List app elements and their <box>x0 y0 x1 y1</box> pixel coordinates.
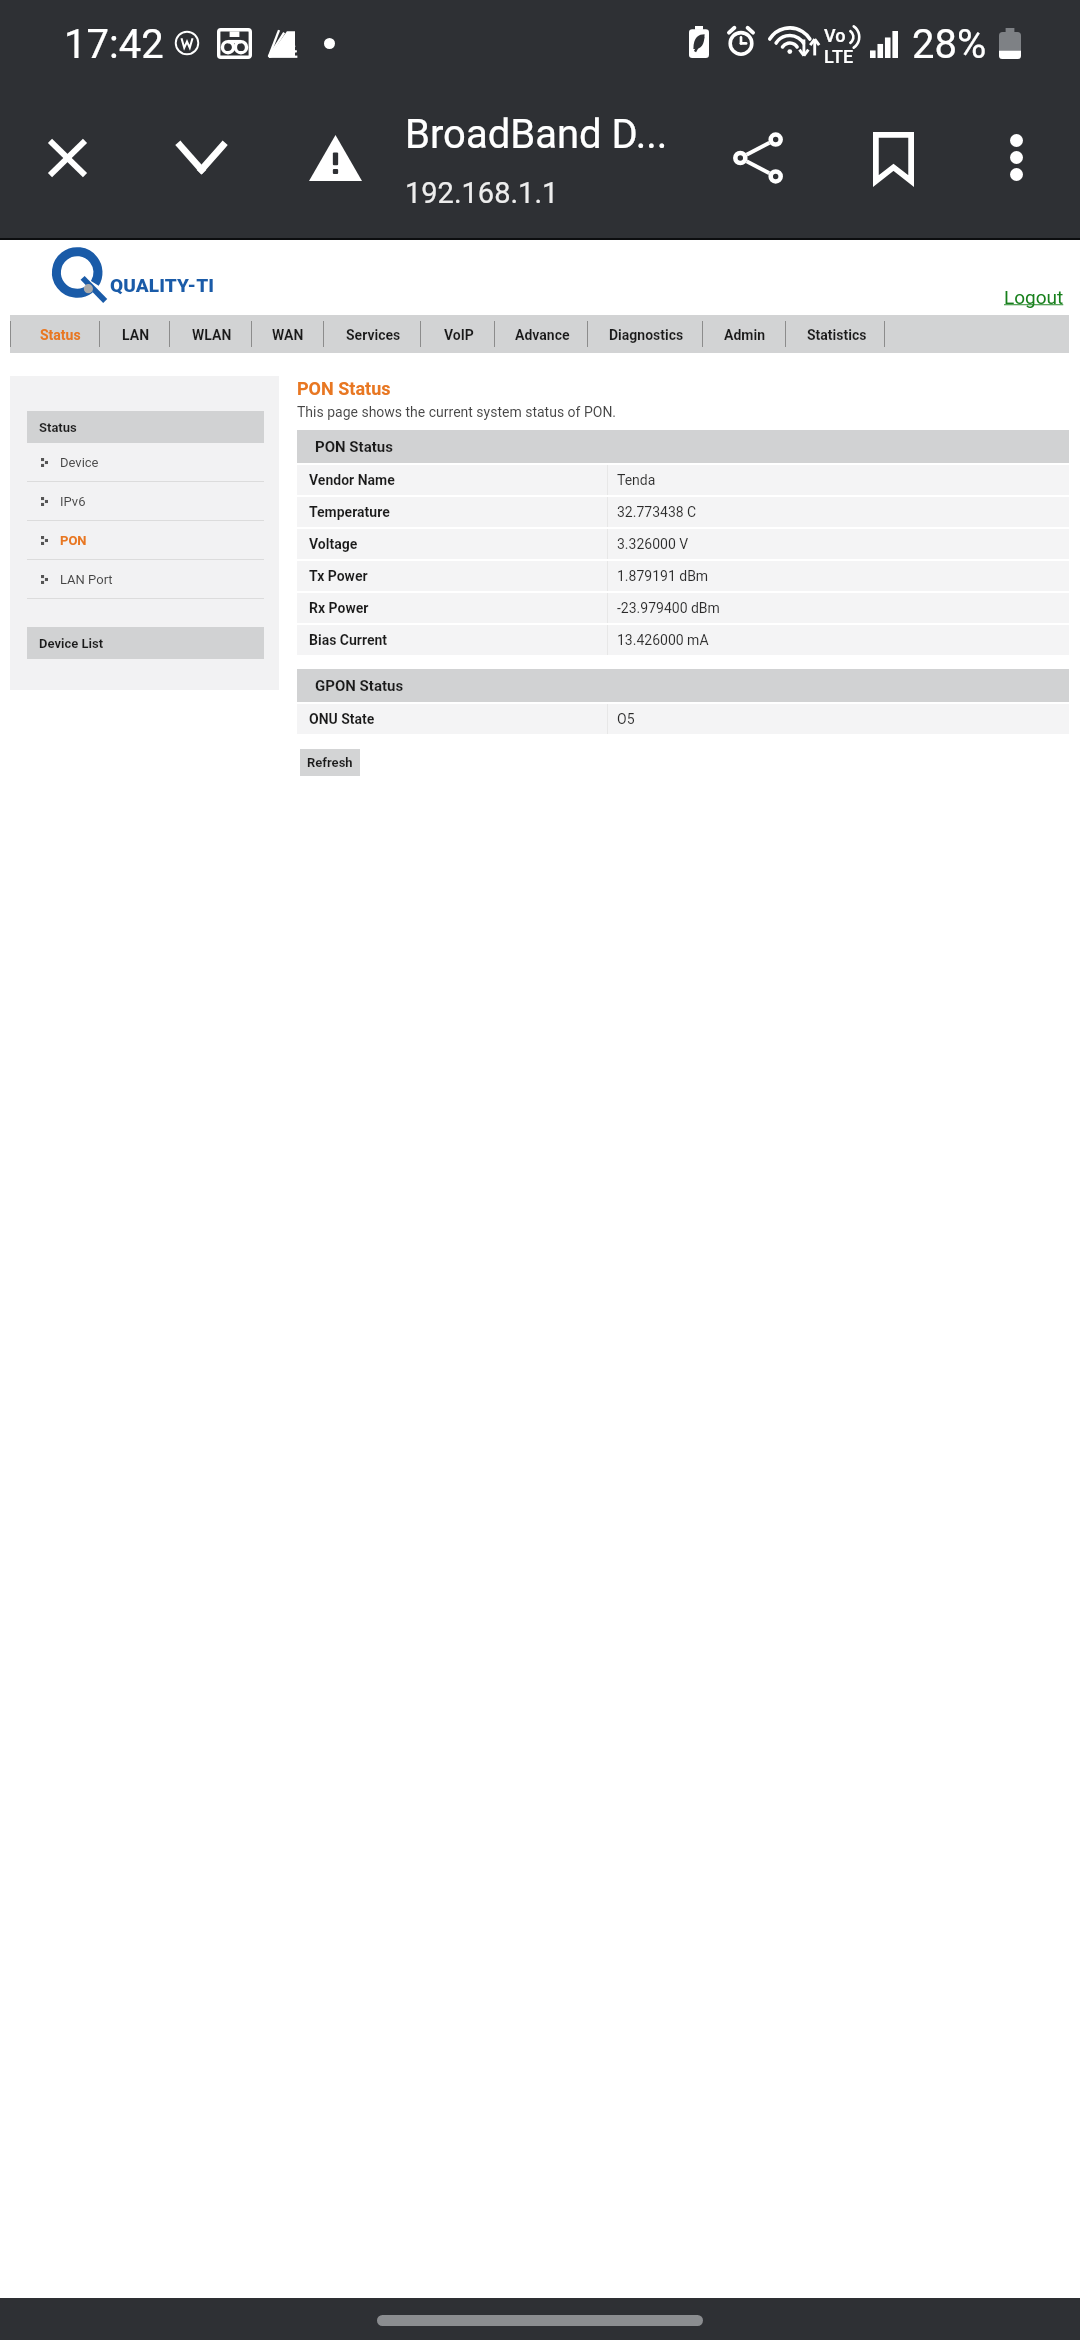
button[interactable]: Status <box>27 411 264 443</box>
staticText: Tx Power <box>309 568 368 584</box>
staticText: PON Status <box>315 438 393 456</box>
staticText: WLAN <box>192 327 232 343</box>
staticText: Logout <box>1004 286 1064 308</box>
button[interactable]: Device <box>27 443 264 482</box>
staticText: 28% <box>912 21 987 68</box>
button[interactable]: Security info <box>268 85 402 240</box>
button[interactable]: Collapse <box>134 85 268 240</box>
button[interactable]: LAN Port <box>27 560 264 599</box>
staticText: -23.979400 dBm <box>617 600 720 616</box>
button[interactable]: Refresh <box>300 749 360 776</box>
button[interactable]: Bookmark <box>826 85 960 240</box>
staticText: Refresh <box>307 755 353 770</box>
staticText: This page shows the current system statu… <box>297 404 617 420</box>
staticText: 17:42 <box>64 21 164 68</box>
button[interactable]: Admin <box>702 315 785 353</box>
button[interactable]: Status <box>10 315 99 353</box>
staticText: IPv6 <box>60 494 86 509</box>
staticText: Statistics <box>807 327 867 343</box>
staticText: Rx Power <box>309 600 369 616</box>
staticText: Voltage <box>309 536 358 552</box>
button[interactable]: Advance <box>494 315 587 353</box>
staticText: Status <box>40 327 81 343</box>
button[interactable]: WAN <box>251 315 323 353</box>
staticText: 32.773438 C <box>617 504 697 520</box>
staticText: Bias Current <box>309 632 388 648</box>
staticText: Device <box>60 455 99 470</box>
staticText: Vendor Name <box>309 472 395 488</box>
button[interactable]: Logout <box>1004 286 1064 308</box>
staticText: Vo <box>824 25 846 46</box>
staticText: 3.326000 V <box>617 536 689 552</box>
staticText: Tenda <box>617 472 656 488</box>
button[interactable]: Home <box>377 2315 703 2326</box>
staticText: LAN Port <box>60 572 113 587</box>
button[interactable]: WLAN <box>169 315 251 353</box>
button[interactable]: Services <box>323 315 420 353</box>
button[interactable]: LAN <box>99 315 169 353</box>
staticText: LAN <box>122 327 150 343</box>
staticText: PON Status <box>297 378 391 399</box>
button[interactable]: VoIP <box>420 315 494 353</box>
staticText: LTE <box>824 46 854 65</box>
button[interactable]: Device List <box>27 627 264 659</box>
button[interactable]: PON <box>27 521 264 560</box>
staticText: QUALITY-TI <box>110 274 215 296</box>
staticText: PON <box>60 533 87 548</box>
staticText: BroadBand D... <box>405 111 668 158</box>
staticText: Admin <box>724 327 765 343</box>
staticText: O5 <box>617 711 635 727</box>
button[interactable]: Statistics <box>785 315 884 353</box>
button[interactable]: Diagnostics <box>587 315 702 353</box>
staticText: Diagnostics <box>609 327 684 343</box>
staticText: GPON Status <box>315 677 404 695</box>
staticText: 1.879191 dBm <box>617 568 709 584</box>
staticText: 13.426000 mA <box>617 632 709 648</box>
button[interactable]: More options <box>949 85 1080 240</box>
staticText: Status <box>39 420 77 435</box>
button[interactable]: Share <box>691 85 825 240</box>
staticText: ONU State <box>309 711 375 727</box>
staticText: Services <box>346 327 401 343</box>
staticText: VoIP <box>444 327 474 343</box>
staticText: 192.168.1.1 <box>405 176 559 210</box>
button[interactable]: IPv6 <box>27 482 264 521</box>
staticText: Device List <box>39 636 104 651</box>
staticText: Temperature <box>309 504 390 520</box>
staticText: WAN <box>272 327 304 343</box>
button[interactable]: Close <box>0 85 134 240</box>
staticText: Advance <box>515 327 570 343</box>
